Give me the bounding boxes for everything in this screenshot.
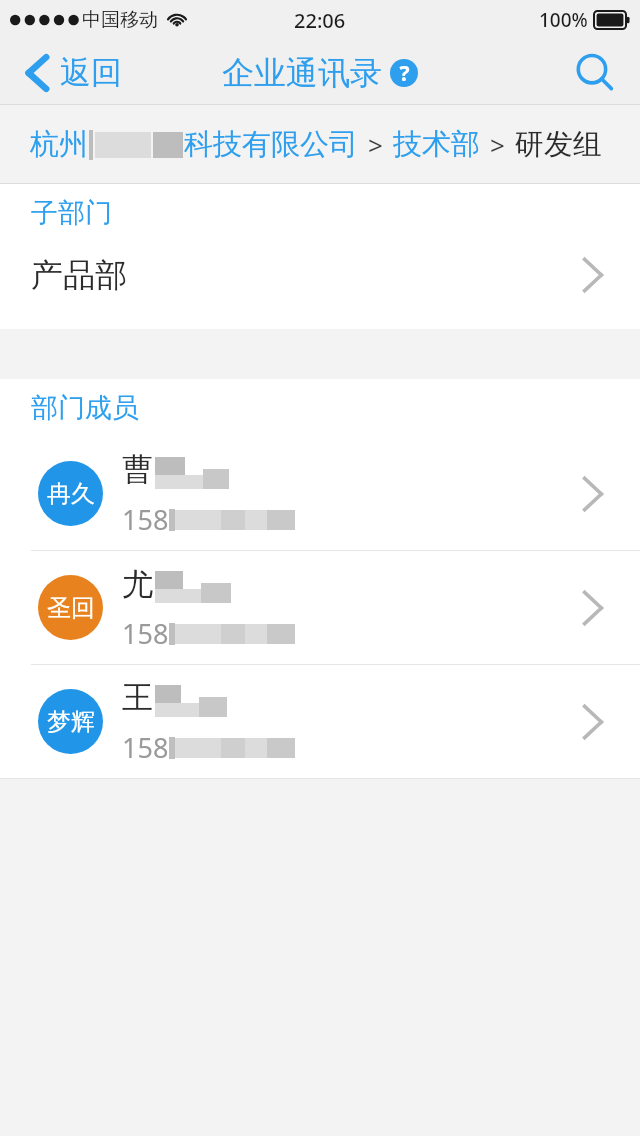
staticText: 研发组 [515, 126, 602, 163]
button[interactable]: 搜索 [560, 44, 640, 102]
button[interactable]: 冉久 [0, 437, 640, 550]
button[interactable]: 杭州 [0, 105, 640, 184]
staticText: 部门成员 [31, 391, 139, 425]
staticText: > [490, 127, 505, 162]
button[interactable]: 梦辉 [0, 665, 640, 778]
button[interactable]: 产品部 [0, 242, 640, 307]
staticText: 冉久 [47, 479, 95, 509]
staticText: 梦辉 [47, 707, 95, 737]
staticText: 158 [122, 729, 169, 766]
staticText: 158 [122, 615, 169, 652]
staticText: ? [399, 59, 410, 87]
button[interactable]: 返回 [0, 45, 140, 100]
staticText: 返回 [60, 53, 122, 92]
staticText: 曹 [122, 450, 153, 489]
staticText: 子部门 [31, 196, 112, 230]
staticText: 杭州 [30, 126, 88, 163]
staticText: 158 [122, 501, 169, 538]
staticText: 产品部 [31, 255, 127, 295]
staticText: 尤 [122, 564, 153, 603]
staticText: 技术部 [393, 126, 480, 163]
staticText: 100% [539, 7, 588, 33]
staticText: 王 [122, 678, 153, 717]
staticText: 22:06 [294, 7, 346, 34]
staticText: 科技有限公司 [184, 126, 358, 163]
staticText: 企业通讯录 [222, 53, 382, 93]
button[interactable]: 圣回 [0, 551, 640, 664]
staticText: > [368, 127, 383, 162]
staticText: 中国移动 [82, 8, 158, 32]
button[interactable]: 帮助 [390, 59, 418, 87]
staticText: 圣回 [47, 593, 95, 623]
